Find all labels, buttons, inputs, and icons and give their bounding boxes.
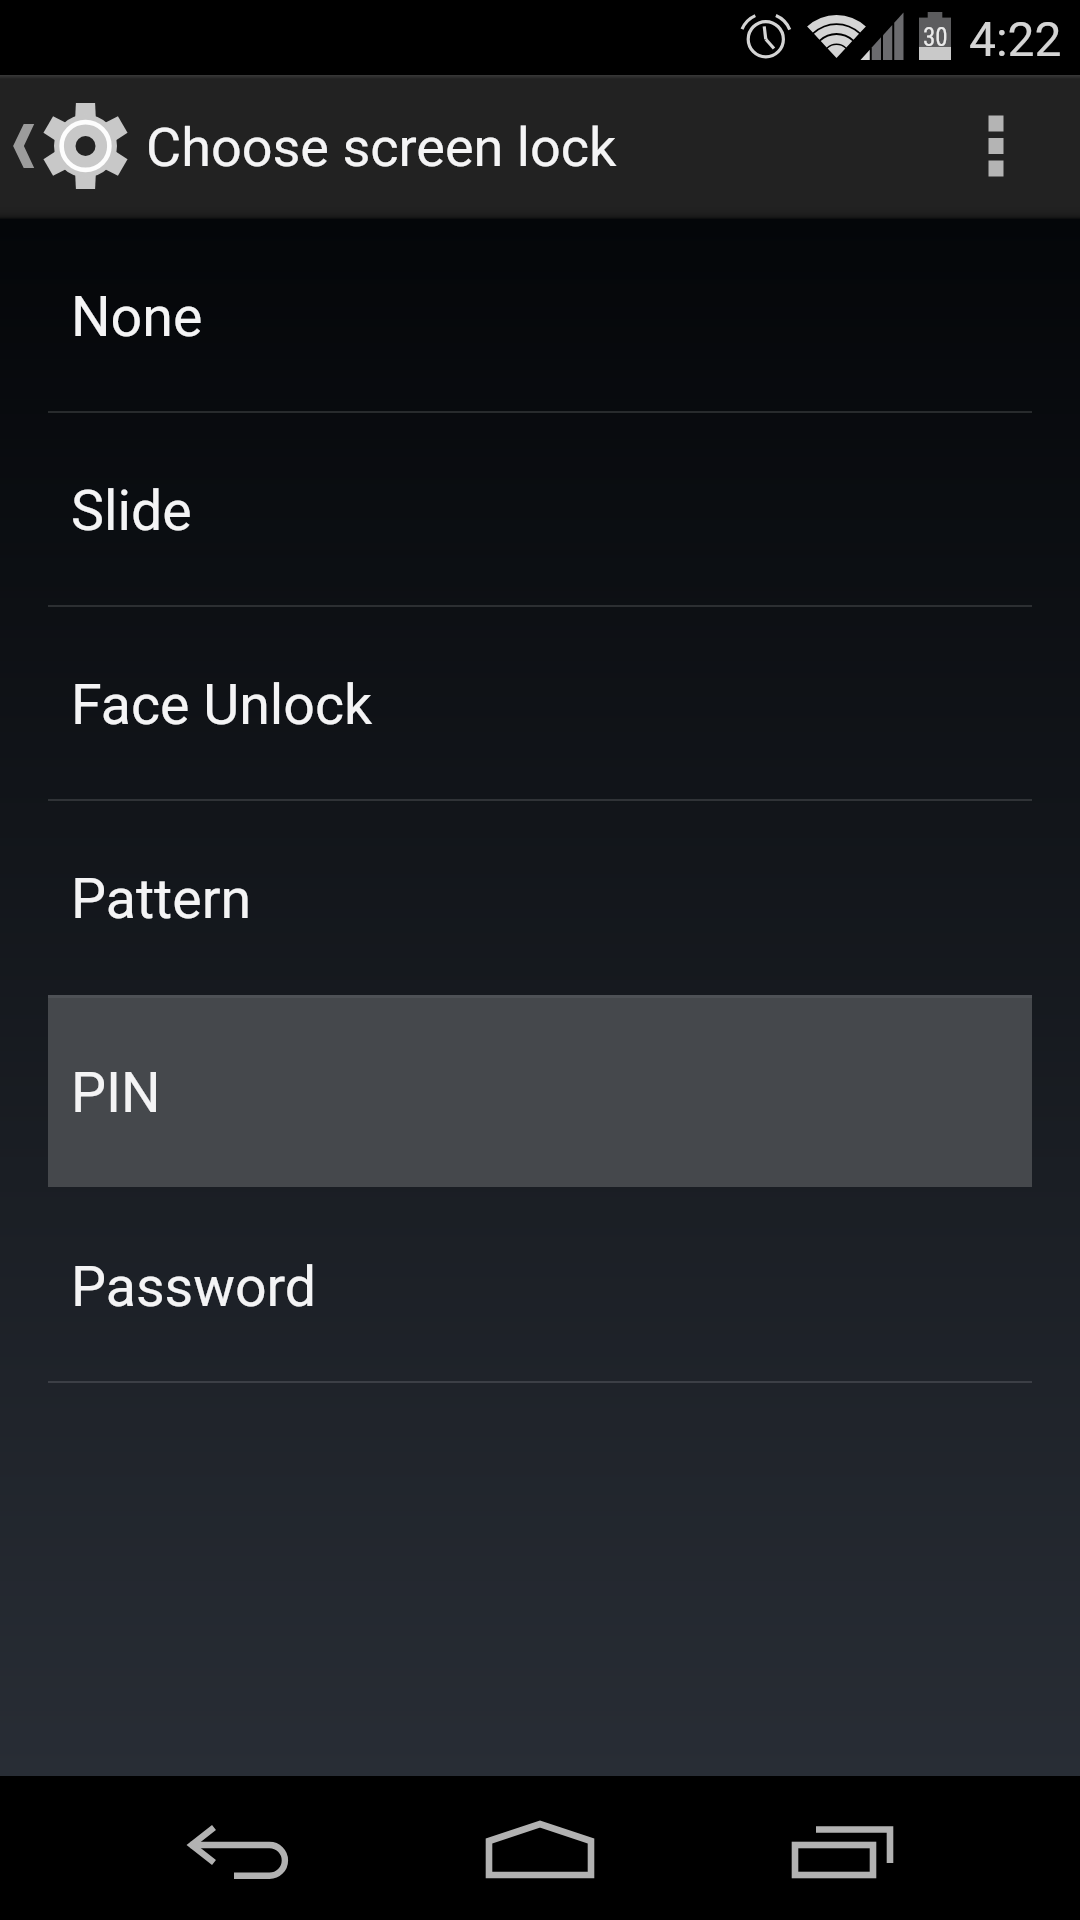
button[interactable]: Home <box>360 1776 720 1920</box>
staticText: 4:22 <box>969 11 1062 67</box>
staticText: Pattern <box>71 867 252 932</box>
staticText: None <box>71 285 203 350</box>
button[interactable]: Navigate up <box>0 75 660 219</box>
button[interactable]: Back <box>0 1776 360 1920</box>
staticText: Password <box>71 1255 317 1320</box>
staticText: Slide <box>71 479 192 544</box>
staticText: Choose screen lock <box>146 116 617 179</box>
button[interactable]: PIN <box>0 995 1080 1189</box>
button[interactable]: Face Unlock <box>0 607 1080 801</box>
button[interactable]: Slide <box>0 413 1080 607</box>
staticText: 30 <box>923 23 948 52</box>
button[interactable]: Password <box>0 1189 1080 1383</box>
button[interactable]: Recent apps <box>720 1776 1080 1920</box>
button[interactable]: Pattern <box>0 801 1080 995</box>
button[interactable]: None <box>0 219 1080 413</box>
staticText: PIN <box>71 1061 161 1126</box>
staticText: Face Unlock <box>71 673 373 738</box>
button[interactable]: More options <box>960 75 1080 217</box>
